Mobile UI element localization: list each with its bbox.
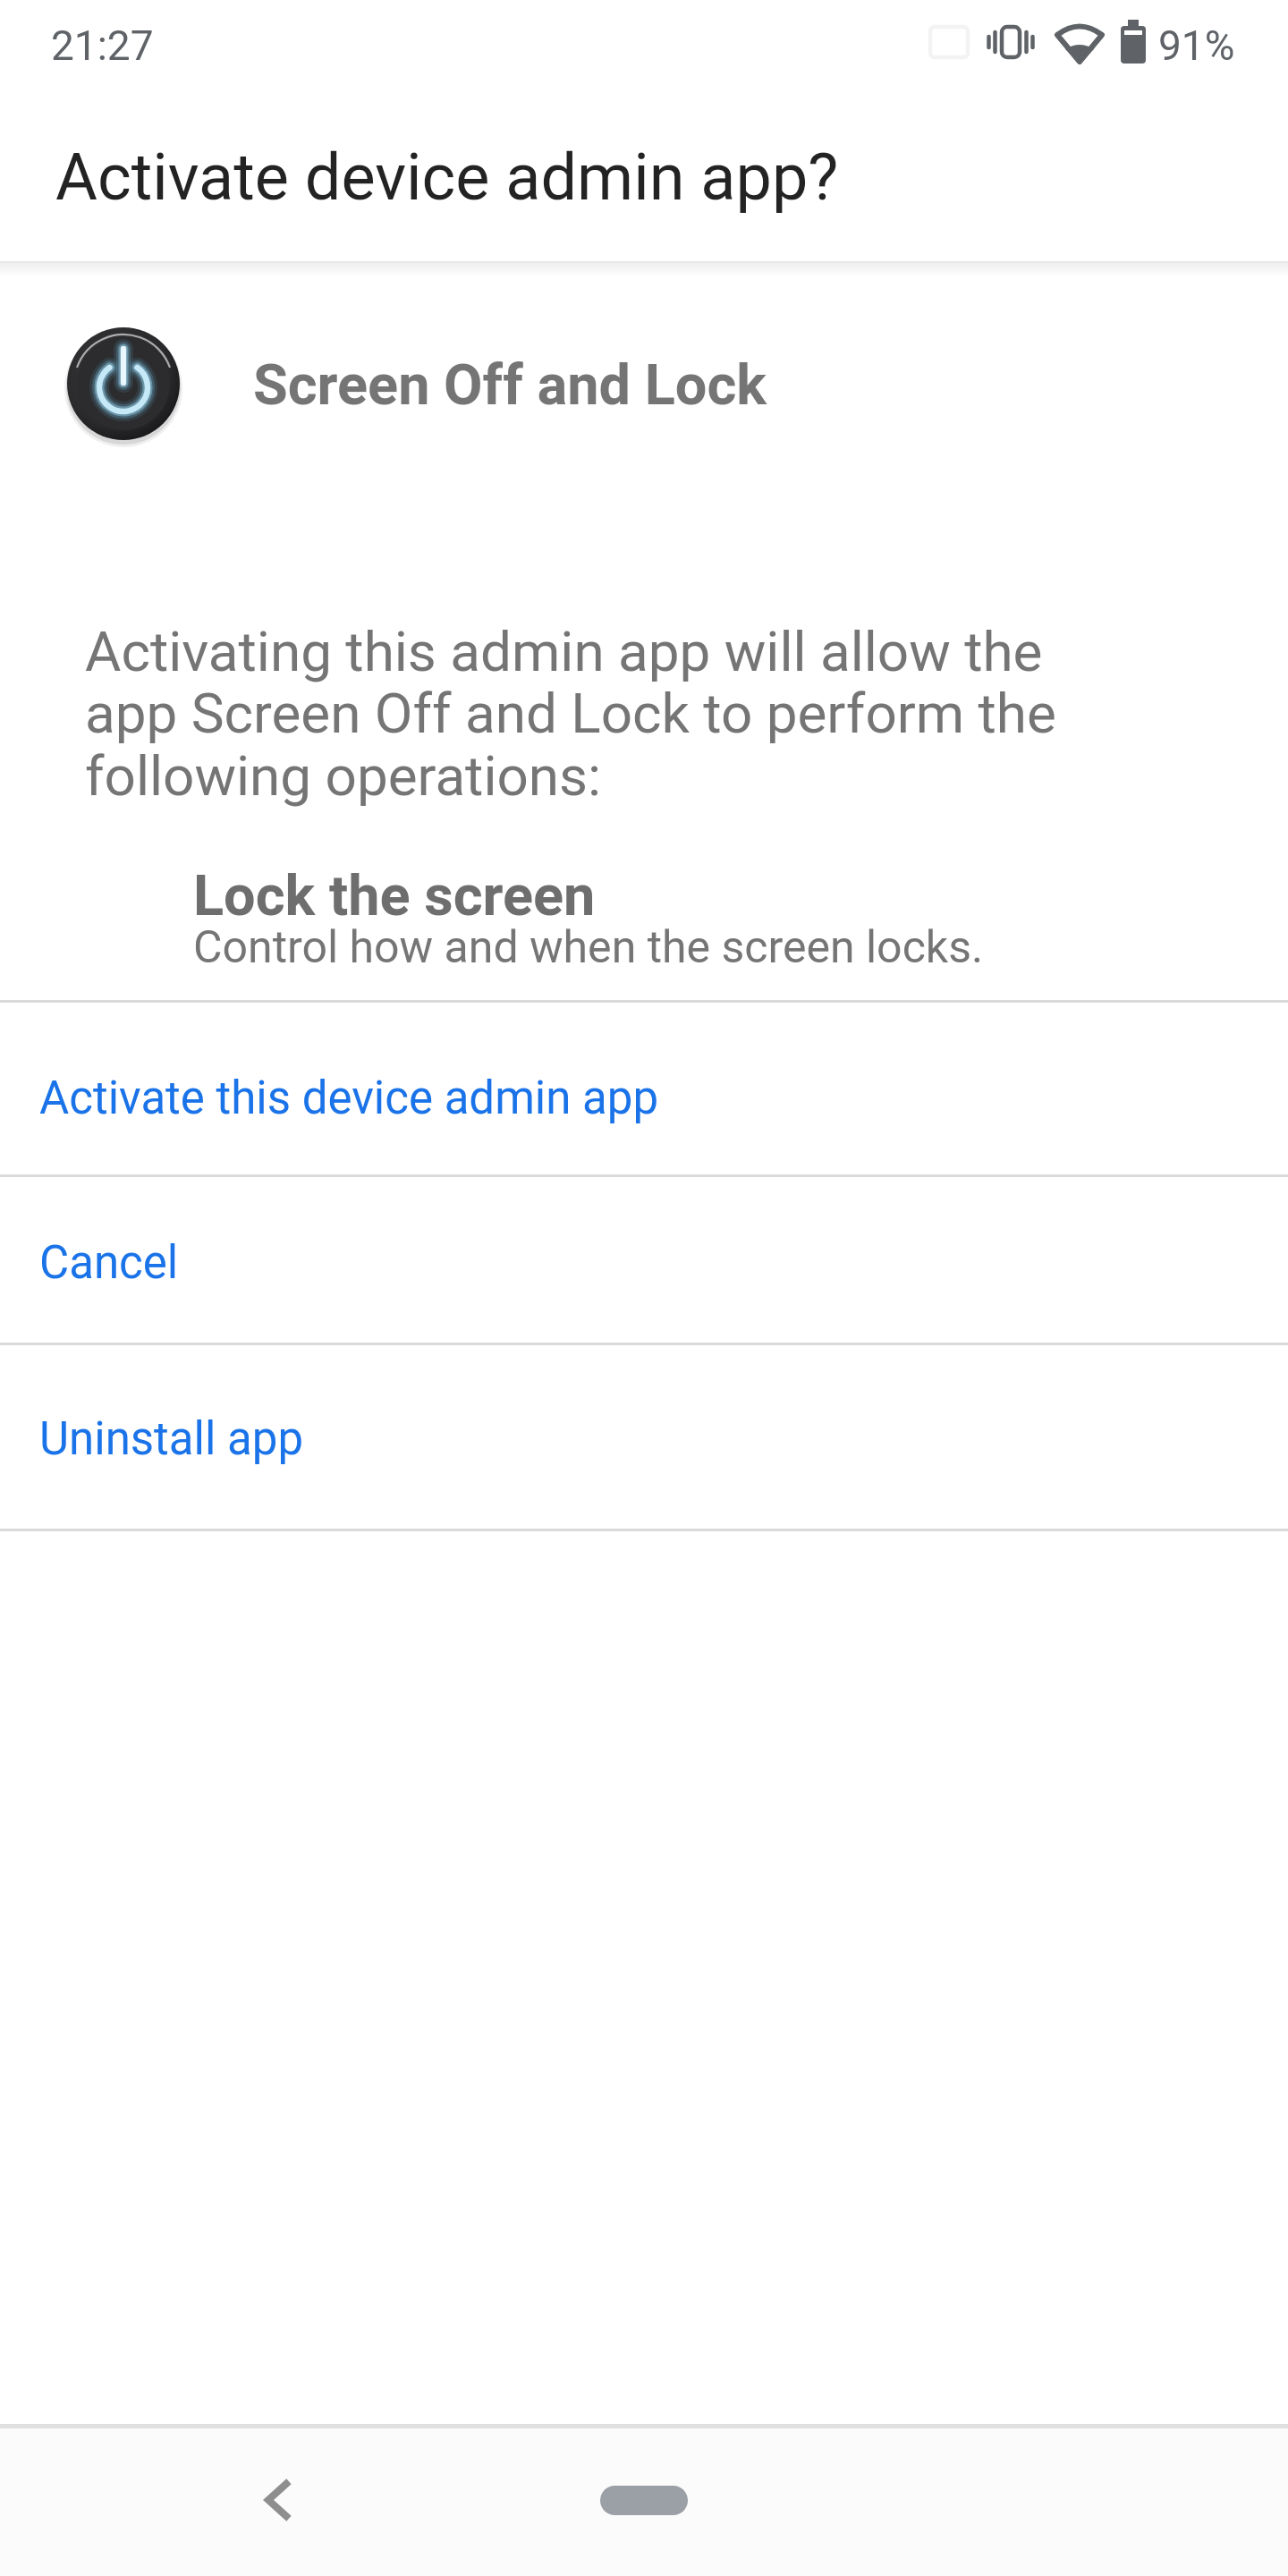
staticText: Activate device admin app?: [55, 140, 839, 215]
staticText: Uninstall app: [39, 1412, 304, 1466]
staticText: Lock the screen: [193, 863, 596, 929]
staticText: Cancel: [39, 1236, 179, 1290]
button[interactable]: [600, 2486, 688, 2515]
staticText: 91%: [1158, 21, 1235, 70]
staticText: 21:27: [51, 21, 154, 70]
button[interactable]: Cancel: [0, 1177, 1288, 1343]
button[interactable]: Uninstall app: [0, 1345, 1288, 1529]
button[interactable]: Activate this device admin app: [0, 1003, 1288, 1174]
button[interactable]: [228, 2451, 326, 2549]
staticText: Control how and when the screen locks.: [193, 921, 984, 974]
staticText: Screen Off and Lock: [253, 352, 767, 419]
staticText: Activating this admin app will allow the…: [85, 619, 1056, 809]
staticText: Activate this device admin app: [39, 1072, 659, 1125]
